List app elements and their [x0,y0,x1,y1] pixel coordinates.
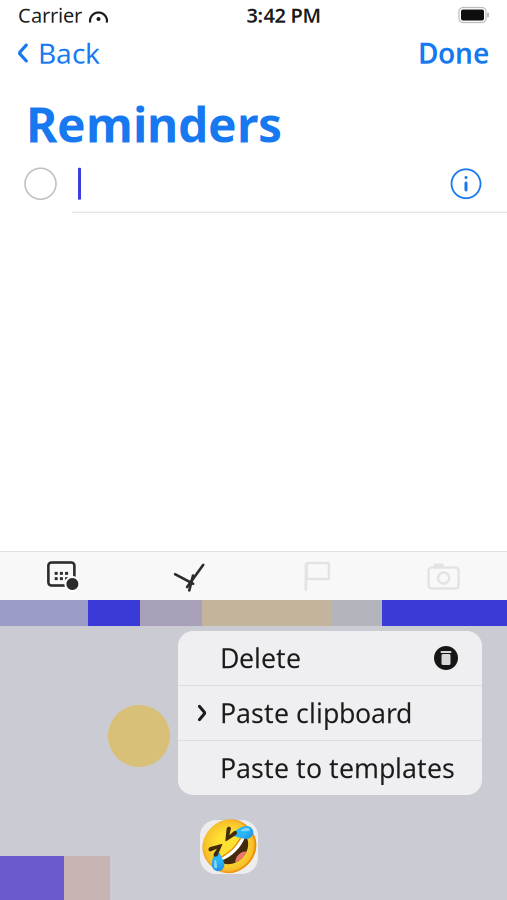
staticText: Reminders [26,92,282,156]
button[interactable]: Remind me at a location [168,554,212,598]
button[interactable]: Reminder title [61,161,445,207]
staticText: Back [38,34,100,72]
button[interactable]: Details [445,163,487,205]
staticText: Done [418,34,489,72]
staticText: Paste to templates [220,750,455,786]
button[interactable]: Remind me on a day [41,554,85,598]
button[interactable]: Flag [295,554,339,598]
button[interactable]: Done [400,30,507,76]
button[interactable]: Paste to templates [178,741,482,795]
button[interactable]: Back [0,30,116,76]
button[interactable]: Paste clipboard [178,686,482,740]
button[interactable]: Add photo [422,554,466,598]
staticText: Delete [220,640,301,676]
staticText: 3:42 PM [246,2,321,28]
button[interactable]: Delete [178,631,482,685]
staticText: 🤣 [197,818,260,876]
staticText: Paste clipboard [220,695,412,731]
staticText: Carrier [18,2,82,28]
button[interactable]: Mark complete [20,163,61,204]
